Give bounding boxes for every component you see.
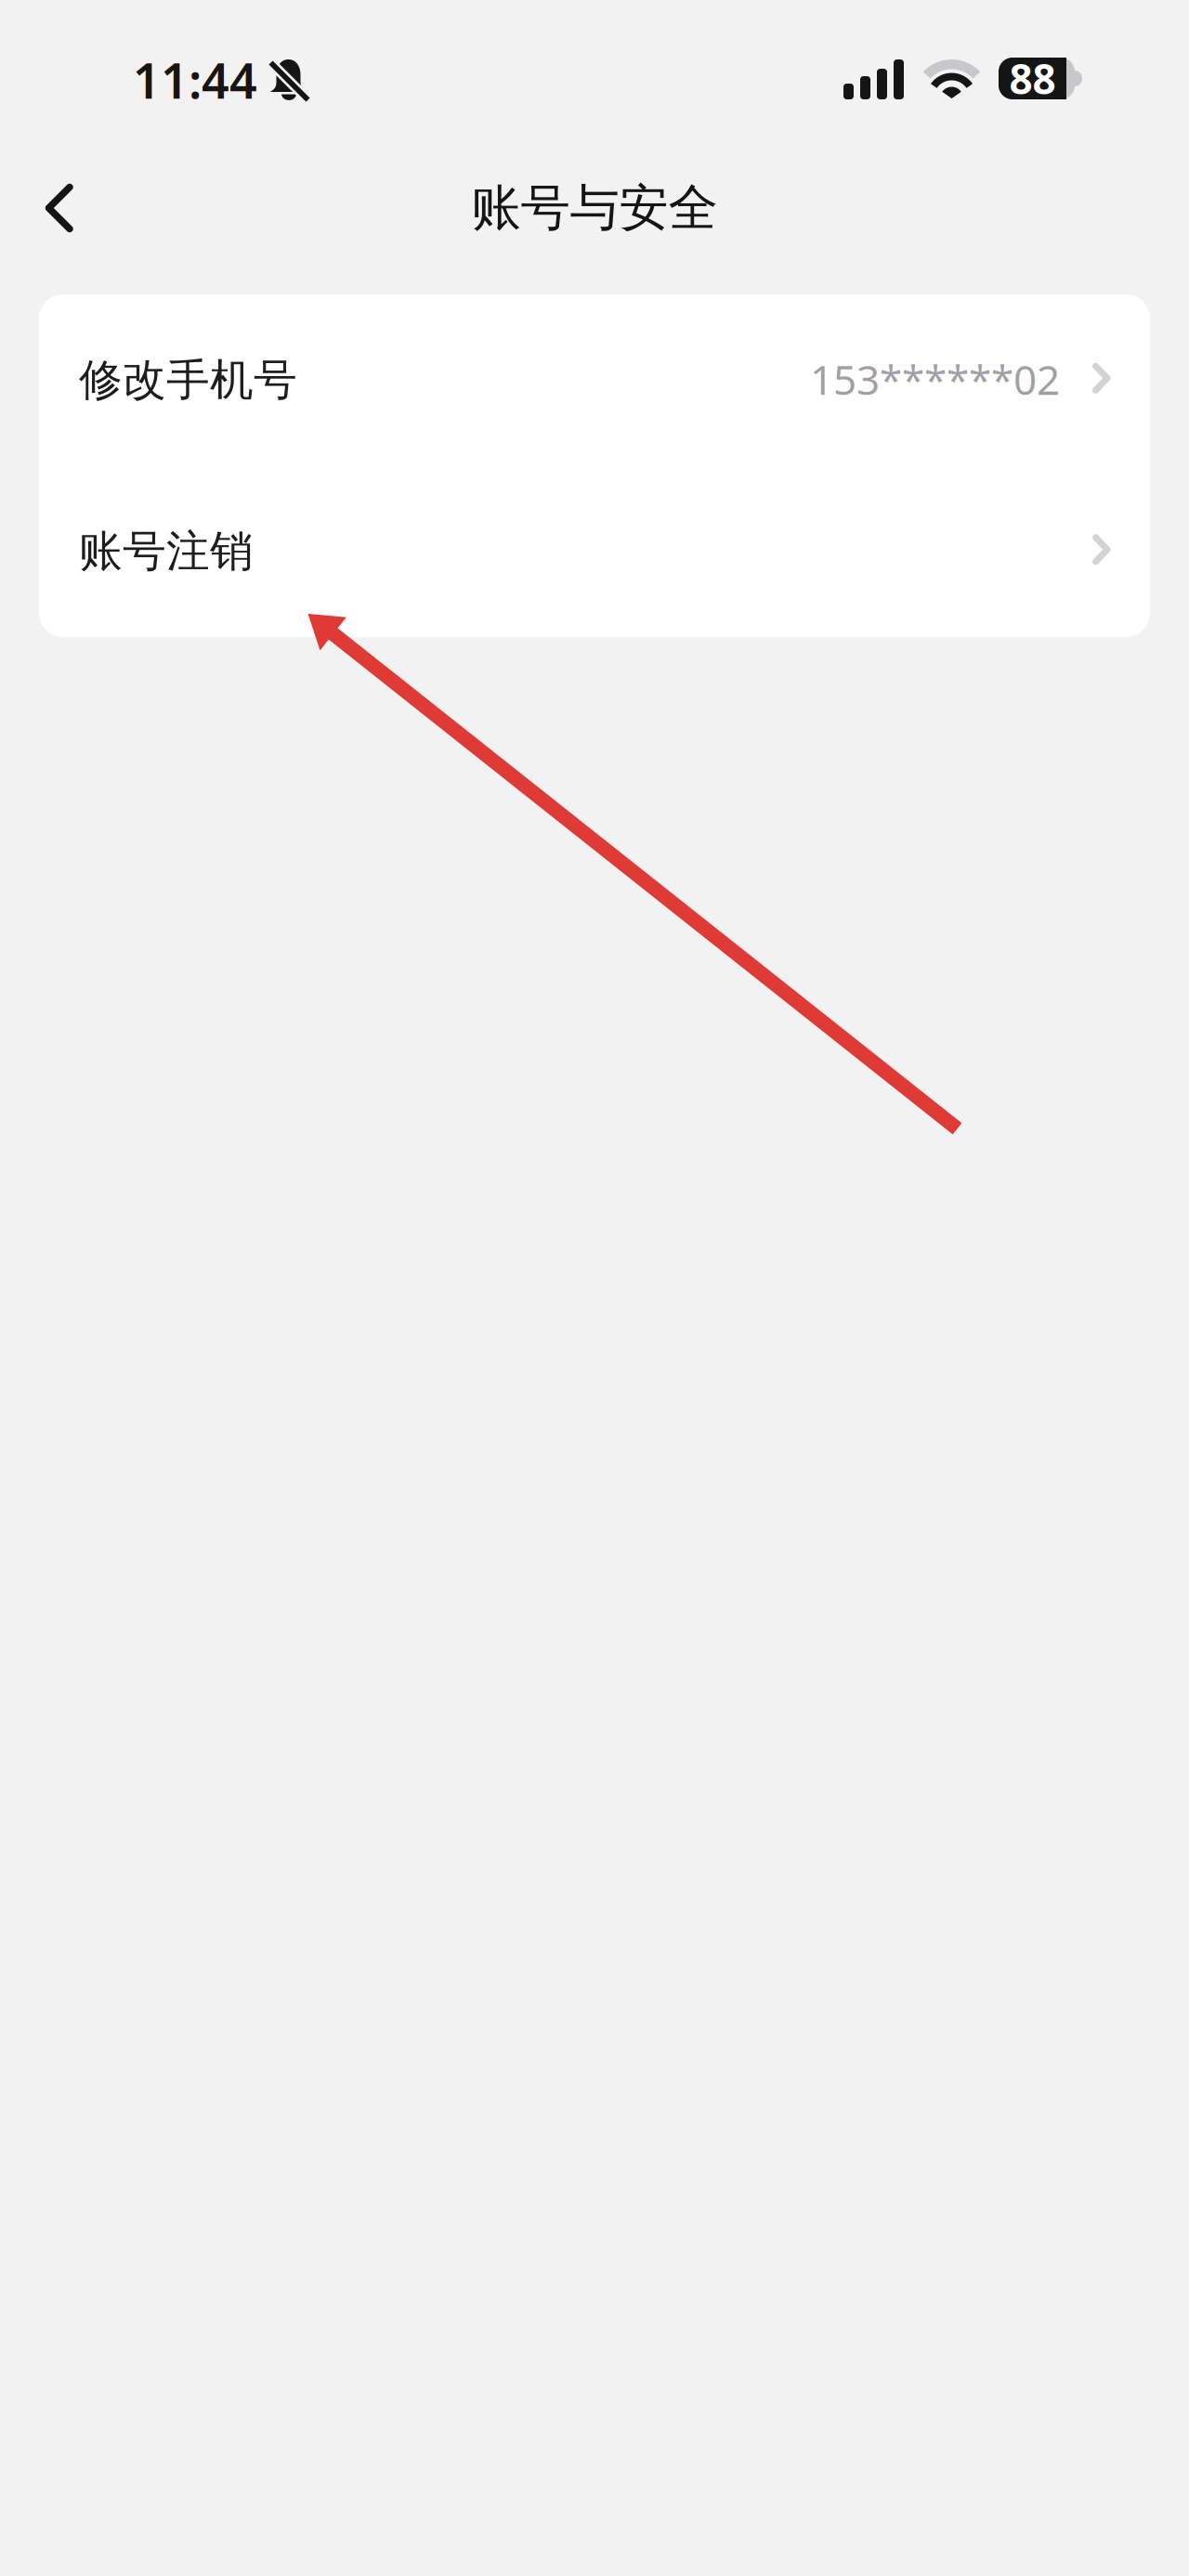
- staticText: 11:44: [133, 48, 257, 112]
- button[interactable]: 账号注销: [39, 466, 1150, 637]
- staticText: 153******02: [810, 352, 1060, 406]
- button[interactable]: 修改手机号: [39, 294, 1150, 466]
- staticText: 账号与安全: [471, 178, 718, 238]
- button[interactable]: Back: [0, 149, 104, 267]
- staticText: 修改手机号: [79, 353, 297, 407]
- staticText: 88: [1009, 51, 1056, 106]
- staticText: 账号注销: [79, 525, 254, 578]
